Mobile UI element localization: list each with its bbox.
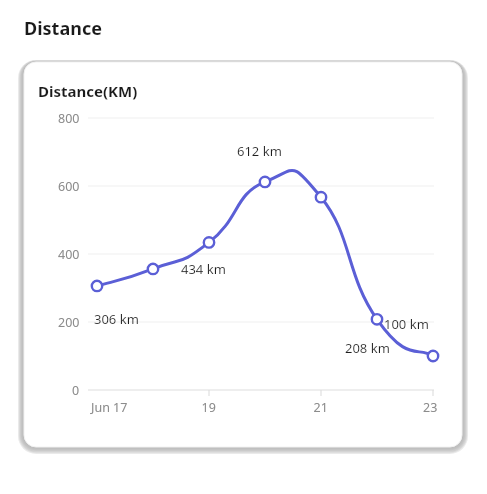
button[interactable]: Distance line chart [0,0,487,494]
